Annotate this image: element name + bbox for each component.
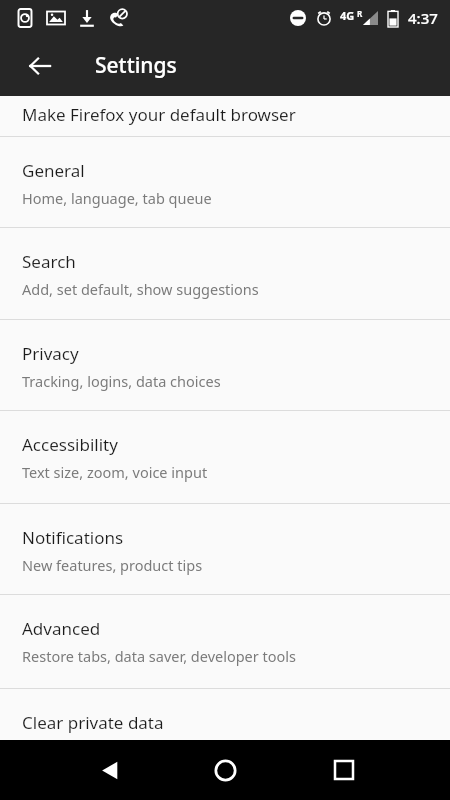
staticText: Restore tabs, data saver, developer tool… bbox=[22, 646, 297, 666]
staticText: Home, language, tab queue bbox=[22, 188, 212, 208]
button[interactable]: Recent apps bbox=[320, 746, 368, 794]
staticText: Notifications bbox=[22, 526, 124, 549]
button[interactable]: General bbox=[0, 137, 450, 227]
staticText: Search bbox=[22, 250, 76, 273]
staticText: New features, product tips bbox=[22, 555, 203, 575]
staticText: Make Firefox your default browser bbox=[22, 103, 296, 126]
button[interactable]: Back bbox=[86, 746, 134, 794]
staticText: General bbox=[22, 159, 85, 182]
button[interactable]: Search bbox=[0, 228, 450, 318]
staticText: 4:37 bbox=[408, 8, 438, 28]
button[interactable]: Accessibility bbox=[0, 411, 450, 501]
button[interactable]: Clear private data bbox=[0, 689, 450, 740]
staticText: Privacy bbox=[22, 342, 79, 365]
button[interactable]: Make Firefox your default browser bbox=[0, 96, 450, 136]
button[interactable]: Home bbox=[201, 746, 249, 794]
staticText: Accessibility bbox=[22, 433, 118, 456]
staticText: 4G bbox=[340, 8, 355, 23]
button[interactable]: Advanced bbox=[0, 595, 450, 685]
button[interactable]: Privacy bbox=[0, 320, 450, 410]
staticText: R bbox=[357, 8, 363, 19]
staticText: Text size, zoom, voice input bbox=[22, 462, 208, 482]
button[interactable]: Back bbox=[14, 40, 66, 92]
staticText: Tracking, logins, data choices bbox=[22, 371, 221, 391]
staticText: Clear private data bbox=[22, 711, 164, 734]
staticText: Add, set default, show suggestions bbox=[22, 279, 259, 299]
staticText: Settings bbox=[95, 51, 177, 80]
button[interactable]: Notifications bbox=[0, 504, 450, 594]
staticText: Advanced bbox=[22, 617, 101, 640]
